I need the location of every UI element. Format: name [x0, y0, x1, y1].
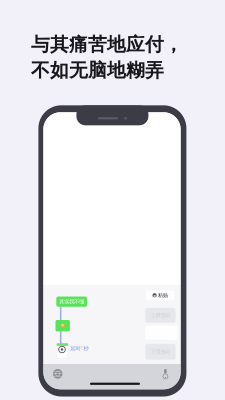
- button[interactable]: 下滑选词: [145, 344, 176, 360]
- staticText: 延时1秒: [70, 345, 88, 352]
- staticText: 不如无脑地糊弄: [31, 59, 164, 82]
- button[interactable]: 上滑选词: [145, 308, 176, 323]
- button[interactable]: Switch keyboard: [53, 369, 62, 379]
- staticText: 与其痛苦地应付，: [31, 33, 183, 56]
- button[interactable]: Dictation: [163, 369, 168, 378]
- staticText: 下滑选词: [150, 348, 170, 355]
- staticText: 粘贴: [158, 292, 168, 299]
- button[interactable]: 粘贴: [146, 290, 175, 300]
- staticText: 上滑选词: [150, 312, 170, 319]
- staticText: 其实我不懂: [59, 298, 84, 305]
